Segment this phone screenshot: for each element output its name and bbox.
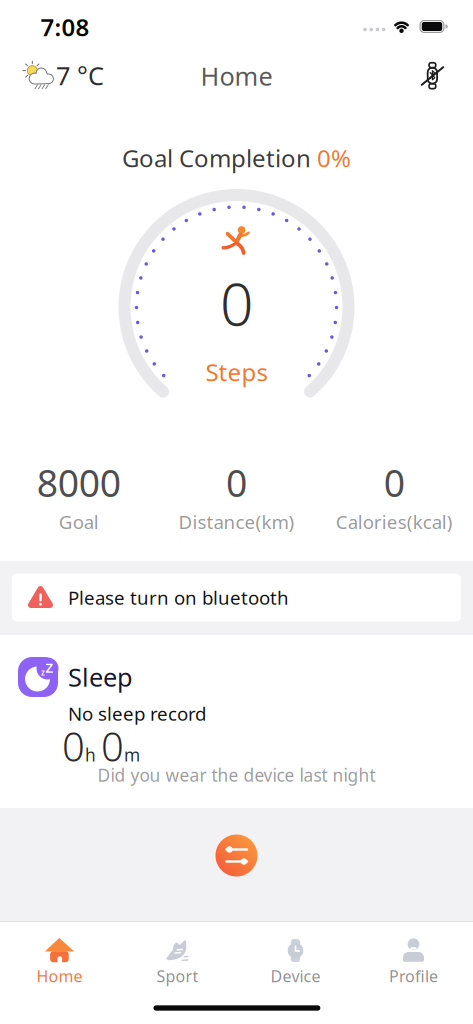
button[interactable]: Sport [118, 932, 236, 992]
staticText: No sleep record [68, 701, 206, 726]
staticText: Goal [59, 509, 99, 534]
staticText: Did you wear the device last night [97, 763, 375, 786]
staticText: Device [270, 965, 320, 987]
staticText: Sleep [68, 660, 133, 694]
staticText: 7:08 [40, 11, 89, 43]
staticText: Calories(kcal) [336, 509, 453, 534]
button[interactable]: Home [0, 932, 118, 992]
staticText: 0h 0m [62, 719, 140, 772]
staticText: 0 [220, 264, 253, 342]
staticText: Profile [389, 965, 438, 987]
staticText: Z [45, 659, 53, 676]
staticText: Please turn on bluetooth [68, 585, 289, 610]
staticText: 0% [317, 142, 351, 174]
staticText: z [41, 667, 45, 678]
staticText: Home [36, 965, 82, 987]
button[interactable]: Device disconnected [410, 54, 454, 98]
staticText: 0 [384, 458, 405, 507]
button[interactable]: Weather [12, 53, 60, 105]
staticText: Sport [156, 965, 198, 987]
staticText: 0 [226, 458, 247, 507]
staticText: Goal Completion [122, 142, 317, 174]
staticText: Steps [205, 356, 267, 388]
button[interactable]: Z [0, 635, 473, 808]
button[interactable]: Device [236, 932, 354, 992]
button[interactable]: Edit goals [215, 834, 257, 876]
staticText: 7 °C [56, 59, 104, 92]
button[interactable]: Profile [354, 932, 472, 992]
button[interactable]: Please turn on bluetooth [12, 573, 461, 621]
staticText: 8000 [37, 458, 121, 507]
staticText: Home [200, 59, 272, 93]
staticText: Distance(km) [178, 509, 294, 534]
